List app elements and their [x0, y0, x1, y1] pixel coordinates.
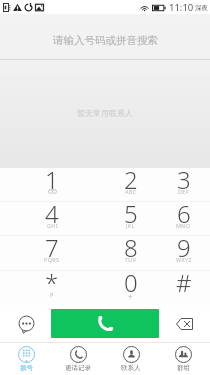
staticText: MNO — [176, 222, 191, 229]
staticText: 0 — [124, 266, 138, 299]
staticText: 通话记录 — [65, 364, 91, 372]
staticText: # — [176, 266, 192, 299]
button[interactable]: # — [157, 271, 210, 305]
button[interactable]: Backspace — [172, 312, 196, 336]
staticText: 6 — [177, 197, 191, 230]
staticText: 请输入号码或拼音搜索 — [53, 34, 158, 47]
button[interactable]: 4 — [0, 202, 104, 235]
staticText: 3 — [177, 163, 191, 196]
button[interactable]: 群组 — [157, 342, 210, 375]
staticText: 4 — [45, 197, 59, 230]
staticText: PQRS — [44, 256, 60, 263]
button[interactable]: Message — [14, 312, 38, 336]
staticText: 11:10 — [169, 1, 194, 14]
staticText: P — [50, 291, 54, 298]
staticText: 联系人 — [121, 364, 141, 372]
staticText: WXYZ — [176, 256, 192, 263]
staticText: 5 — [124, 197, 138, 230]
staticText: 1 — [45, 163, 59, 196]
staticText: 群组 — [177, 364, 190, 372]
staticText: + — [128, 291, 133, 302]
staticText: 深夜 — [195, 4, 208, 12]
staticText: GHI — [47, 222, 58, 229]
staticText: 2 — [124, 163, 138, 196]
staticText: 8 — [124, 231, 138, 264]
button[interactable]: 9 — [157, 236, 210, 270]
staticText: DEF — [178, 188, 189, 195]
staticText: 拨号 — [20, 364, 33, 372]
staticText: 9 — [177, 231, 191, 264]
button[interactable]: 8 — [104, 236, 157, 270]
button[interactable]: 6 — [157, 202, 210, 235]
button[interactable]: 0 — [104, 271, 157, 305]
button[interactable]: * — [0, 271, 104, 305]
button[interactable]: 通话记录 — [52, 342, 104, 375]
staticText: 7 — [45, 231, 59, 264]
staticText: JKL — [126, 222, 135, 229]
staticText: * — [45, 266, 59, 299]
staticText: 暂无常用联系人 — [77, 108, 133, 118]
button[interactable]: 3 — [157, 168, 210, 201]
button[interactable]: 2 — [104, 168, 157, 201]
button[interactable]: 5 — [104, 202, 157, 235]
staticText: TUV — [125, 256, 137, 263]
button[interactable]: Call — [51, 309, 159, 338]
staticText: ABC — [125, 188, 137, 195]
button[interactable]: 拨号 — [0, 342, 52, 375]
button[interactable]: 联系人 — [104, 342, 157, 375]
button[interactable]: 7 — [0, 236, 104, 270]
button[interactable]: 1 — [0, 168, 104, 201]
